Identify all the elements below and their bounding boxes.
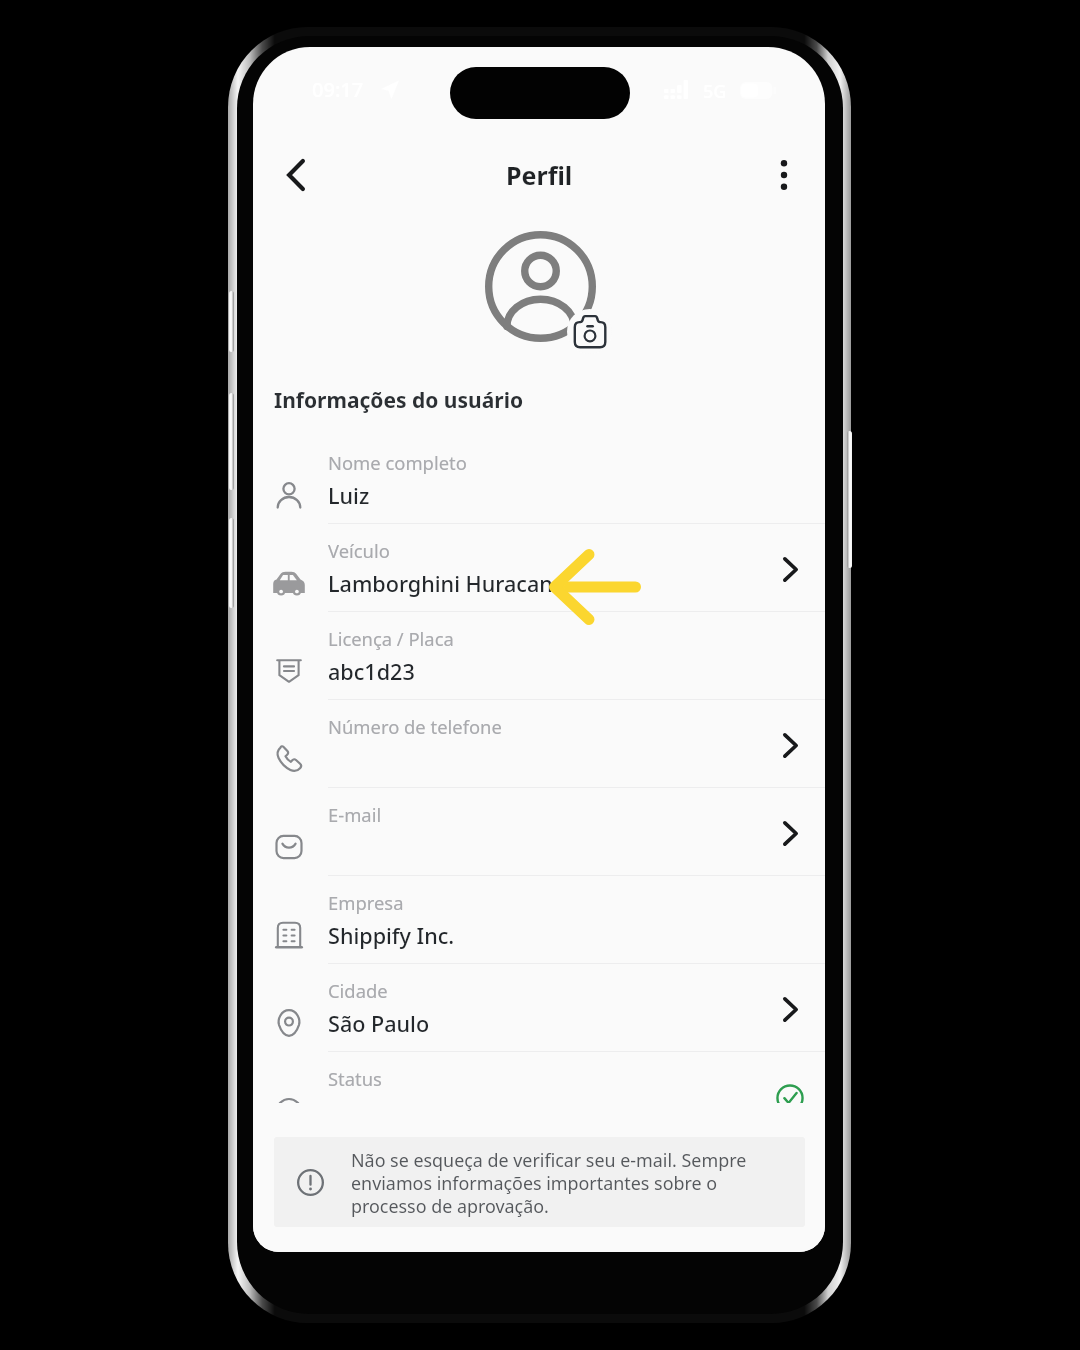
staticText: Status: [328, 1066, 382, 1091]
button[interactable]: Empresa: [253, 876, 825, 964]
staticText: Veículo: [328, 538, 390, 563]
staticText: Luiz: [328, 481, 370, 510]
staticText: São Paulo: [328, 1009, 430, 1038]
staticText: Licença / Placa: [328, 626, 454, 651]
staticText: Nome completo: [328, 450, 467, 475]
button[interactable]: Cidade: [253, 964, 825, 1052]
button[interactable]: Back: [269, 148, 323, 202]
button[interactable]: Status: [253, 1052, 825, 1103]
staticText: Não se esqueça de verificar seu e-mail. …: [351, 1148, 751, 1218]
staticText: Cidade: [328, 978, 388, 1003]
button[interactable]: Change profile photo: [481, 231, 599, 349]
staticText: Perfil: [506, 158, 573, 192]
button[interactable]: Nome completo: [253, 436, 825, 524]
button[interactable]: Não se esqueça de verificar seu e-mail. …: [274, 1137, 805, 1227]
button[interactable]: Licença / Placa: [253, 612, 825, 700]
staticText: Empresa: [328, 890, 404, 915]
staticText: abc1d23: [328, 657, 415, 686]
button[interactable]: Número de telefone: [253, 700, 825, 788]
button[interactable]: More options: [757, 148, 811, 202]
staticText: Lamborghini Huracan: [328, 569, 553, 598]
staticText: Número de telefone: [328, 714, 502, 739]
button[interactable]: Veículo: [253, 524, 825, 612]
button[interactable]: E-mail: [253, 788, 825, 876]
staticText: Informações do usuário: [274, 386, 524, 415]
staticText: E-mail: [328, 802, 382, 827]
staticText: Shippify Inc.: [328, 921, 455, 950]
